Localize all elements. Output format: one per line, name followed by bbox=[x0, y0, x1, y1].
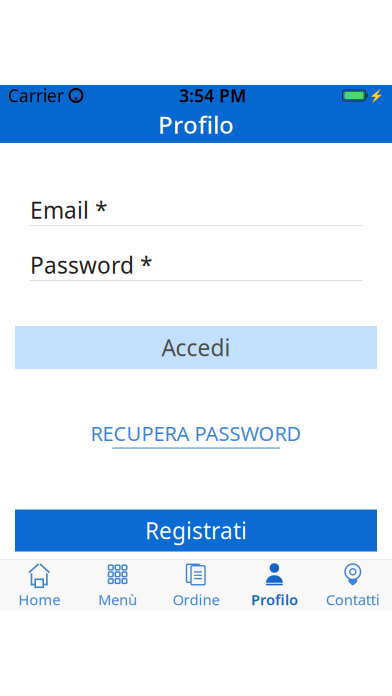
button[interactable]: Profilo bbox=[235, 560, 314, 611]
staticText: Profilo bbox=[251, 590, 298, 609]
staticText: Menù bbox=[98, 590, 137, 609]
staticText: Password * bbox=[30, 250, 152, 280]
staticText: RECUPERA PASSWORD bbox=[90, 420, 301, 447]
staticText: Ordine bbox=[172, 590, 219, 609]
button[interactable]: Menù bbox=[78, 560, 157, 611]
staticText: Registrati bbox=[145, 515, 247, 546]
staticText: Profilo bbox=[158, 108, 234, 140]
button[interactable]: Ordine bbox=[157, 560, 235, 611]
staticText: Email * bbox=[30, 195, 107, 225]
button[interactable]: Home bbox=[0, 560, 78, 611]
staticText: Accedi bbox=[161, 332, 230, 362]
staticText: 3:54 PM bbox=[179, 84, 246, 107]
staticText: ⚡ bbox=[369, 89, 384, 102]
button[interactable]: Accedi bbox=[15, 326, 377, 369]
button[interactable]: Contatti bbox=[314, 560, 392, 611]
button[interactable]: RECUPERA PASSWORD bbox=[78, 416, 313, 453]
button[interactable]: Registrati bbox=[15, 509, 377, 551]
staticText: Contatti bbox=[326, 590, 380, 609]
staticText: Home bbox=[18, 590, 60, 609]
staticText: Carrier bbox=[8, 84, 64, 107]
